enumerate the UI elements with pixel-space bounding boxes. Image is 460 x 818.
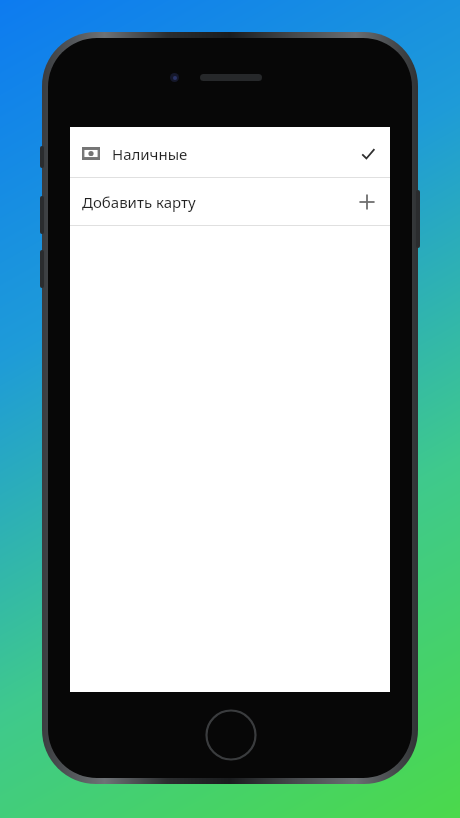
staticText: Наличные	[112, 144, 188, 164]
staticText: Добавить карту	[82, 192, 196, 212]
button[interactable]: Наличные	[70, 130, 390, 177]
button[interactable]: Добавить карту	[70, 178, 390, 225]
button[interactable]: Home	[205, 709, 257, 761]
